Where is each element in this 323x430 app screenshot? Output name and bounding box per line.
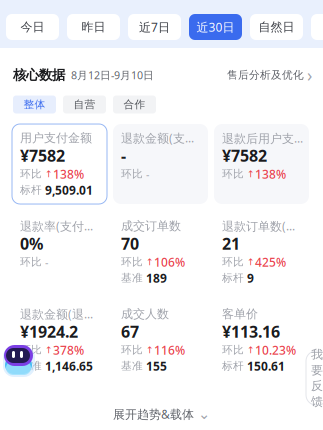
staticText: ↑ xyxy=(45,345,53,355)
staticText: 10.23% xyxy=(255,342,296,358)
staticText: 标杆 xyxy=(20,183,45,196)
button[interactable]: 自 xyxy=(311,14,323,40)
staticText: 环比 xyxy=(222,167,247,180)
button[interactable]: 用户支付金额 xyxy=(12,124,107,204)
button[interactable]: 退款率(支付时间) xyxy=(12,212,107,292)
staticText: 150.61 xyxy=(247,358,285,374)
staticText: 基准 xyxy=(121,271,146,284)
staticText: 环比 xyxy=(121,343,146,356)
staticText: 核心数据 xyxy=(13,67,65,83)
button[interactable]: 退款订单数(退... xyxy=(214,212,309,292)
button[interactable]: 退款金额(支付... xyxy=(113,124,208,204)
staticText: 环比 xyxy=(121,255,146,268)
button[interactable]: 客单价 xyxy=(214,300,309,380)
staticText: ↑ xyxy=(146,257,154,267)
staticText: 138% xyxy=(53,166,84,182)
staticText: 9 xyxy=(247,270,254,286)
staticText: 售后分析及优化 xyxy=(227,68,304,81)
staticText: 成交人数 xyxy=(121,307,169,321)
staticText: 展开趋势&载体 xyxy=(113,406,194,422)
button[interactable]: 整体 xyxy=(13,95,56,113)
staticText: 今日 xyxy=(20,20,44,34)
staticText: 退款金额(支付... xyxy=(121,130,205,146)
staticText: ¥1924.2 xyxy=(20,321,78,342)
staticText: ⌄ xyxy=(198,406,210,422)
staticText: 客单价 xyxy=(222,307,258,321)
button[interactable]: 成交人数 xyxy=(113,300,208,380)
staticText: ¥7582 xyxy=(20,145,65,166)
staticText: 1,146.65 xyxy=(45,358,93,374)
staticText: 标杆 xyxy=(222,359,247,372)
staticText: 成交订单数 xyxy=(121,219,181,233)
button[interactable]: 近7日 xyxy=(128,14,181,40)
staticText: 退款率(支付时间) xyxy=(20,218,104,234)
staticText: 环比 xyxy=(20,167,45,180)
staticText: 基准 xyxy=(121,359,146,372)
button[interactable]: 成交订单数 xyxy=(113,212,208,292)
staticText: 189 xyxy=(146,270,167,286)
staticText: 21 xyxy=(222,233,240,254)
staticText: 9,509.01 xyxy=(45,182,93,198)
staticText: 425% xyxy=(255,254,286,270)
staticText: 155 xyxy=(146,358,167,374)
staticText: 标杆 xyxy=(222,271,247,284)
button[interactable]: 近30日 xyxy=(189,14,242,40)
button[interactable]: 展开趋势&载体 xyxy=(0,398,323,430)
staticText: 138% xyxy=(255,166,286,182)
staticText: 环比 xyxy=(20,343,45,356)
staticText: 0% xyxy=(20,233,43,254)
staticText: 环比 xyxy=(20,255,45,268)
staticText: 退款金额(退款... xyxy=(20,306,104,322)
staticText: 近7日 xyxy=(139,19,170,35)
button[interactable]: 自然日 xyxy=(250,14,303,40)
staticText: ↑ xyxy=(146,345,154,355)
staticText: - xyxy=(45,255,48,269)
staticText: 近30日 xyxy=(196,19,234,35)
staticText: 环比 xyxy=(121,167,146,180)
staticText: › xyxy=(307,63,312,86)
staticText: 馈 xyxy=(311,394,323,409)
button[interactable]: 自营 xyxy=(63,95,106,113)
button[interactable]: 退款金额(退款... xyxy=(12,300,107,380)
staticText: ↑ xyxy=(247,257,255,267)
staticText: 378% xyxy=(53,342,84,358)
staticText: 70 xyxy=(121,233,139,254)
staticText: 自营 xyxy=(73,98,95,111)
button[interactable]: AI 助手 xyxy=(3,343,37,377)
button[interactable]: 昨日 xyxy=(67,14,120,40)
staticText: 自然日 xyxy=(258,20,294,34)
staticText: 环比 xyxy=(222,343,247,356)
staticText: 要 xyxy=(311,363,323,377)
button[interactable]: 我 xyxy=(306,351,323,405)
staticText: 整体 xyxy=(23,98,45,111)
staticText: ¥7582 xyxy=(222,145,267,166)
staticText: 116% xyxy=(154,342,185,358)
staticText: 退款订单数(退... xyxy=(222,218,306,234)
staticText: 退款后用户支付... xyxy=(222,130,306,146)
staticText: 106% xyxy=(154,254,185,270)
button[interactable]: 今日 xyxy=(6,14,59,40)
staticText: - xyxy=(146,167,149,181)
staticText: 用户支付金额 xyxy=(20,131,92,145)
staticText: ↑ xyxy=(247,169,255,179)
staticText: 我 xyxy=(311,347,323,362)
staticText: 合作 xyxy=(123,98,145,111)
staticText: 昨日 xyxy=(81,20,105,34)
button[interactable]: 售后分析及优化 xyxy=(227,63,312,86)
staticText: ¥113.16 xyxy=(222,321,280,342)
staticText: 67 xyxy=(121,321,139,342)
staticText: 8月12日-9月10日 xyxy=(65,68,154,82)
staticText: ↑ xyxy=(247,345,255,355)
staticText: ↑ xyxy=(45,169,53,179)
staticText: 环比 xyxy=(222,255,247,268)
staticText: - xyxy=(121,145,126,166)
button[interactable]: 合作 xyxy=(113,95,156,113)
button[interactable]: 退款后用户支付... xyxy=(214,124,309,204)
staticText: 基准 xyxy=(20,359,45,372)
staticText: 反 xyxy=(311,378,323,393)
